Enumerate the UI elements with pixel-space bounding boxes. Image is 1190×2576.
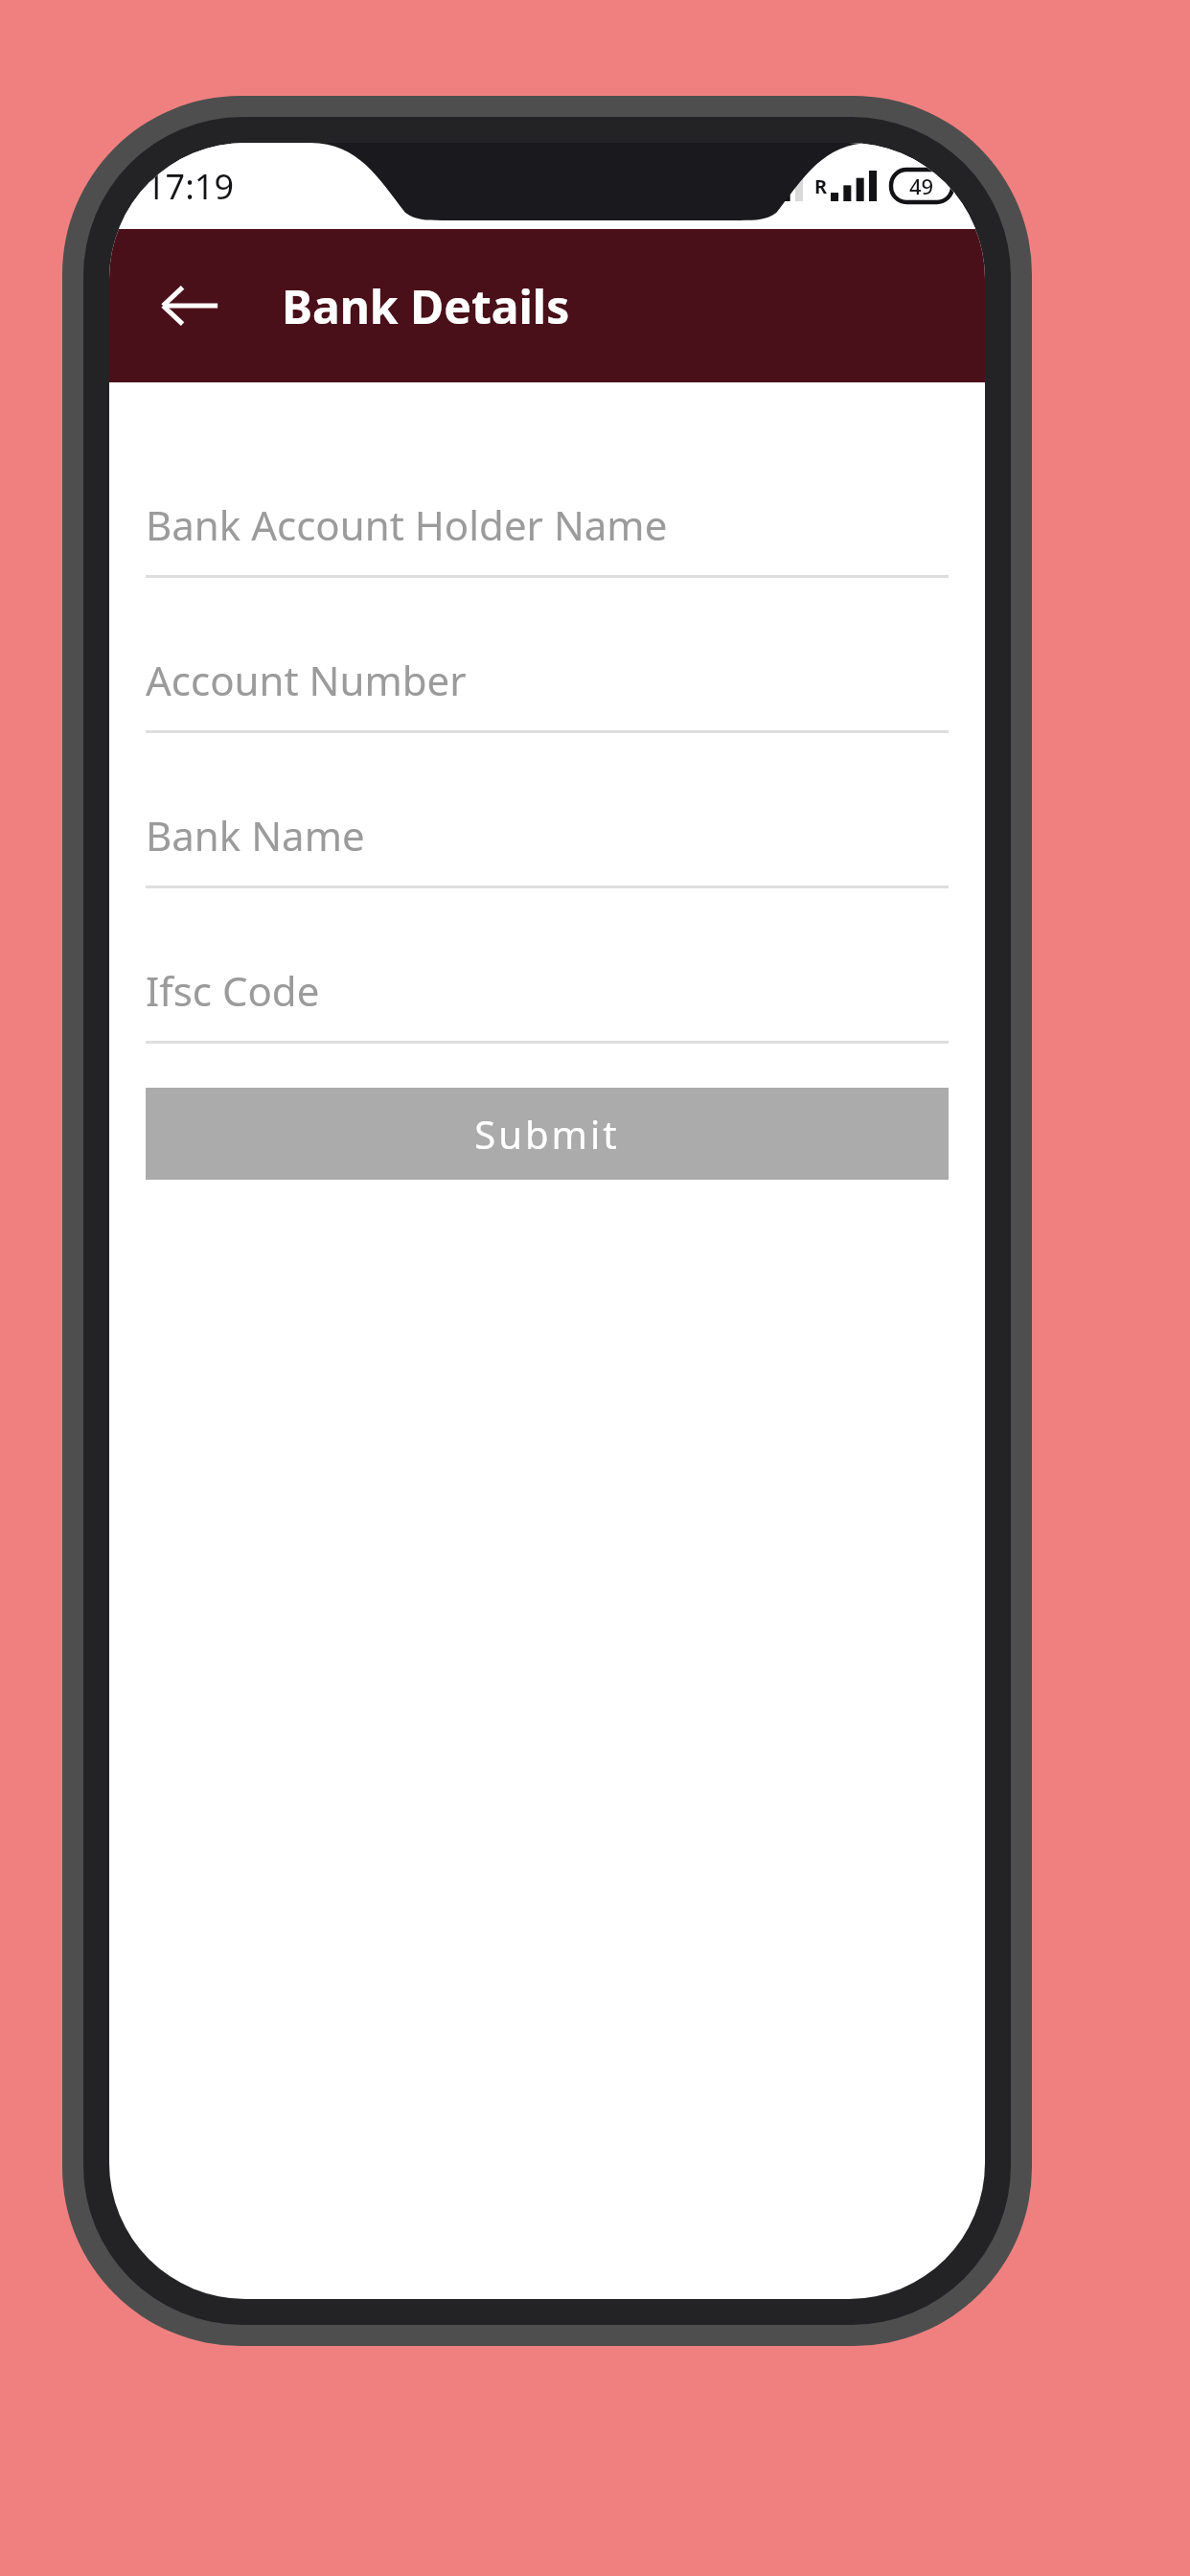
button[interactable]: Account Number xyxy=(146,601,949,756)
button[interactable]: Ifsc Code xyxy=(146,911,949,1067)
staticText: Submit xyxy=(474,1108,620,1160)
staticText: Bank Name xyxy=(146,808,365,862)
staticText: Ifsc Code xyxy=(146,963,320,1018)
button[interactable]: Back xyxy=(132,248,247,363)
staticText: Account Number xyxy=(146,653,467,707)
button[interactable]: Submit xyxy=(146,1088,949,1180)
staticText: 17:19 xyxy=(146,163,235,210)
button[interactable]: Bank Account Holder Name xyxy=(146,446,949,601)
staticText: 49 xyxy=(909,172,934,200)
staticText: Bank Details xyxy=(282,275,570,337)
staticText: Bank Account Holder Name xyxy=(146,497,668,552)
staticText: R xyxy=(814,173,828,199)
button[interactable]: Bank Name xyxy=(146,756,949,911)
